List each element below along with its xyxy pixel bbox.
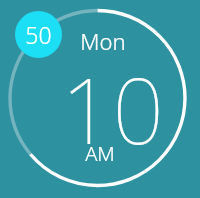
staticText: 50 (25, 19, 52, 50)
staticText: AM (85, 140, 115, 167)
staticText: Mon (80, 26, 126, 56)
button[interactable]: Step count complication, 50 (15, 11, 62, 58)
staticText: 10 (61, 48, 164, 171)
